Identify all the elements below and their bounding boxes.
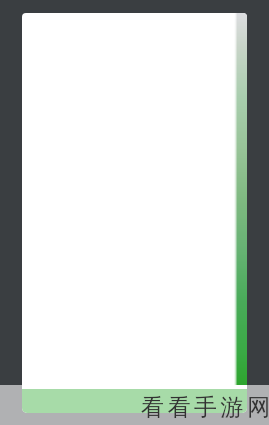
staticText: 看看手游网 bbox=[139, 393, 269, 422]
other: Scroll position bbox=[234, 13, 247, 385]
button[interactable]: Scroll position bbox=[22, 13, 247, 413]
